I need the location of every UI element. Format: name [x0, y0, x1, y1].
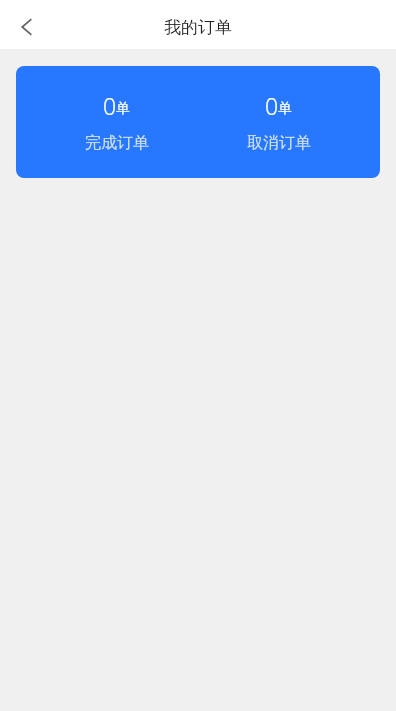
staticText: 完成订单 [85, 133, 149, 153]
staticText: 0单 [103, 90, 131, 121]
button[interactable]: Back [4, 5, 48, 49]
staticText: 我的订单 [164, 17, 232, 38]
button[interactable]: 0单 [198, 66, 380, 178]
button[interactable]: 0单 [16, 66, 198, 178]
staticText: 0单 [265, 90, 293, 121]
staticText: 取消订单 [247, 133, 311, 153]
